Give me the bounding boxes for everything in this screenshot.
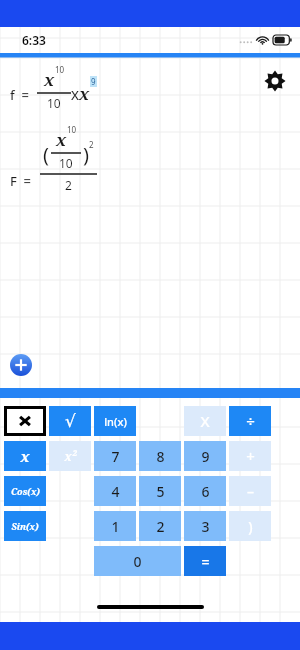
button[interactable]: + <box>229 441 271 471</box>
staticText: 3 <box>201 517 210 536</box>
button[interactable]: 9 <box>184 441 226 471</box>
staticText: x <box>56 128 67 151</box>
staticText: x <box>20 446 30 466</box>
staticText: 10 <box>47 95 61 111</box>
staticText: x <box>44 68 55 91</box>
staticText: 2 <box>65 177 72 193</box>
staticText: 2 <box>156 517 165 536</box>
staticText: Cos(x) <box>11 485 40 497</box>
button[interactable]: Add <box>10 354 32 376</box>
button[interactable]: √ <box>49 406 91 436</box>
button[interactable]: 1 <box>94 511 136 541</box>
staticText: 9 <box>91 76 96 87</box>
staticText: = <box>201 552 210 571</box>
staticText: 2 <box>89 139 94 150</box>
staticText: X <box>71 86 79 104</box>
button[interactable]: 6 <box>184 476 226 506</box>
staticText: 4 <box>111 482 120 501</box>
staticText: 7 <box>111 447 120 466</box>
button[interactable]: 2 <box>139 511 181 541</box>
button[interactable]: Settings <box>260 66 290 96</box>
staticText: F = <box>10 172 32 190</box>
button[interactable]: x <box>4 441 46 471</box>
staticText: ) <box>83 141 89 168</box>
button[interactable]: ÷ <box>229 406 271 436</box>
button[interactable]: 7 <box>94 441 136 471</box>
staticText: 6 <box>201 482 210 501</box>
staticText: – <box>247 482 254 501</box>
staticText: 0 <box>133 552 142 571</box>
staticText: 10 <box>59 155 73 171</box>
staticText: x² <box>64 448 77 464</box>
staticText: x <box>79 82 90 105</box>
staticText: √ <box>65 411 76 431</box>
staticText: 5 <box>156 482 165 501</box>
staticText: X <box>200 411 210 431</box>
staticText: 9 <box>201 447 210 466</box>
button[interactable]: Sin(x) <box>4 511 46 541</box>
staticText: 1 <box>111 517 120 536</box>
staticText: Sin(x) <box>11 520 39 532</box>
button[interactable]: x² <box>49 441 91 471</box>
staticText: 10 <box>67 124 77 135</box>
button[interactable]: = <box>184 546 226 576</box>
staticText: ln(x) <box>104 414 127 429</box>
staticText: 10 <box>55 64 65 75</box>
button[interactable]: 8 <box>139 441 181 471</box>
button[interactable]: 4 <box>94 476 136 506</box>
button[interactable]: 0 <box>94 546 181 576</box>
button[interactable]: 5 <box>139 476 181 506</box>
staticText: 6:33 <box>22 32 46 48</box>
button[interactable]: 3 <box>184 511 226 541</box>
staticText: 8 <box>156 447 165 466</box>
staticText: + <box>246 446 255 466</box>
button[interactable]: ) <box>229 511 271 541</box>
button[interactable]: ln(x) <box>94 406 136 436</box>
staticText: ) <box>248 517 253 536</box>
button[interactable]: Close keyboard <box>7 409 43 433</box>
button[interactable]: X <box>184 406 226 436</box>
staticText: ( <box>43 141 49 168</box>
staticText: ÷ <box>246 411 255 431</box>
button[interactable]: Cos(x) <box>4 476 46 506</box>
staticText: f = <box>10 86 29 104</box>
